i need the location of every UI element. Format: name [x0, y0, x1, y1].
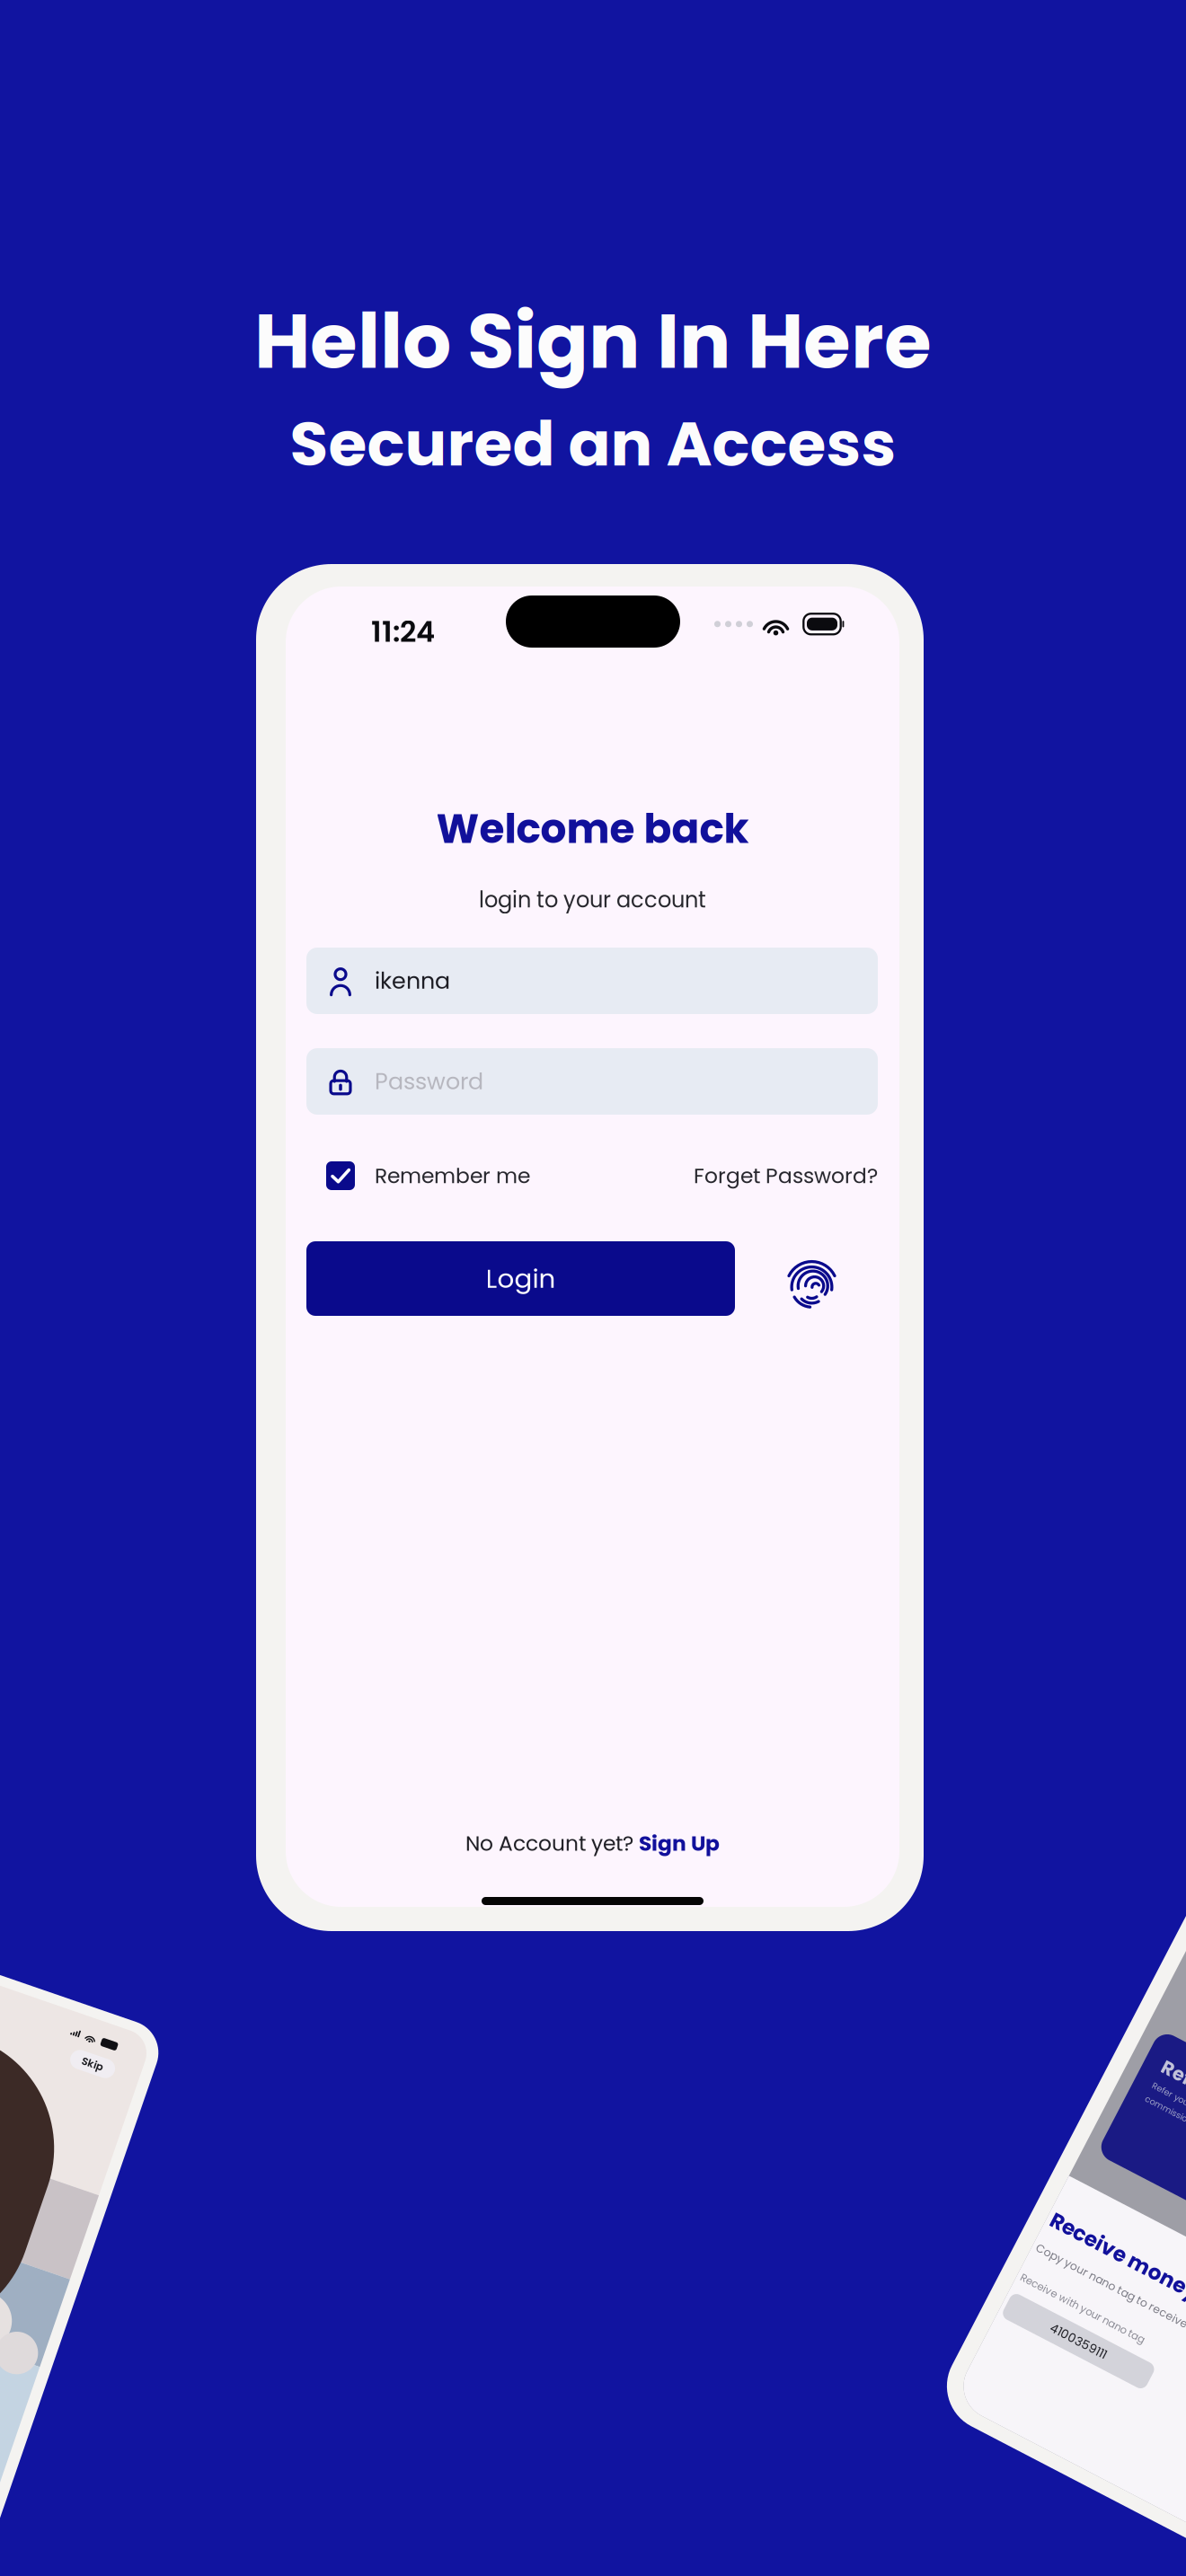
staticText: 11:24	[371, 612, 435, 652]
staticText: No Account yet?	[465, 1829, 639, 1858]
button[interactable]: Forget Password?	[694, 1161, 878, 1190]
staticText: Login	[486, 1260, 556, 1297]
button[interactable]: Sign in with fingerprint	[783, 1255, 840, 1311]
staticText: Secured an Access	[290, 400, 896, 487]
staticText: Forget Password?	[694, 1161, 878, 1190]
staticText: login to your account	[479, 885, 706, 915]
staticText: ikenna	[375, 965, 450, 997]
button[interactable]: Login	[306, 1241, 735, 1316]
button[interactable]: Sign Up	[639, 1829, 720, 1858]
button[interactable]: Remember me	[326, 1161, 530, 1190]
staticText: Sign Up	[639, 1829, 720, 1858]
staticText: Password	[375, 1066, 483, 1097]
staticText: Remember me	[375, 1161, 530, 1190]
staticText: Welcome back	[436, 800, 749, 857]
staticText: Hello Sign In Here	[254, 287, 932, 395]
